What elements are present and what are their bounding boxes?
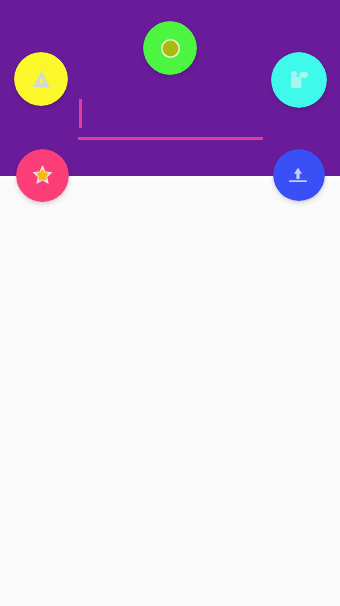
- button[interactable]: Favorite: [16, 149, 69, 202]
- button[interactable]: Record: [143, 21, 197, 75]
- button[interactable]: Text field: [78, 96, 263, 140]
- button[interactable]: Gift: [271, 52, 327, 108]
- button[interactable]: Upload: [273, 149, 325, 201]
- button[interactable]: Warning: [14, 52, 68, 106]
